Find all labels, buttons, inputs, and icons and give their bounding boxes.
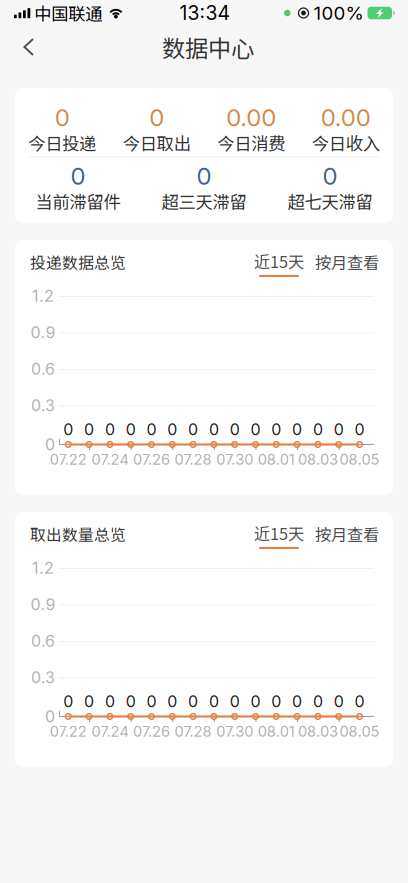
staticText: 0 (105, 692, 115, 711)
button[interactable]: 0 (15, 107, 109, 152)
staticText: 0 (313, 420, 323, 439)
staticText: 08.05 (339, 452, 379, 467)
staticText: 0 (334, 692, 344, 711)
staticText: 0.3 (31, 668, 55, 687)
staticText: 0.6 (31, 631, 55, 651)
staticText: 中国联通 (34, 0, 102, 26)
staticText: 0 (167, 420, 177, 439)
button[interactable]: 0 (109, 107, 204, 152)
staticText: 0 (63, 420, 73, 439)
staticText: 今日取出 (123, 133, 191, 152)
staticText: 0 (292, 692, 302, 711)
button[interactable]: 近15天 (15, 512, 393, 564)
staticText: 0 (45, 435, 55, 454)
staticText: 07.28 (175, 724, 212, 739)
staticText: 0 (354, 420, 364, 439)
staticText: 0 (167, 692, 177, 711)
staticText: 0.6 (31, 359, 55, 379)
staticText: 1.2 (32, 558, 54, 578)
staticText: 0 (334, 420, 344, 439)
staticText: 今日消费 (217, 133, 285, 152)
staticText: 0 (188, 692, 198, 711)
staticText: 0 (313, 692, 323, 711)
staticText: 08.03 (298, 452, 338, 467)
staticText: 1.2 (32, 286, 54, 306)
staticText: 按月查看 (315, 524, 379, 544)
staticText: 08.01 (258, 724, 295, 739)
staticText: 0 (105, 420, 115, 439)
button[interactable]: 0 (15, 165, 141, 211)
staticText: 100% (313, 2, 363, 24)
staticText: 按月查看 (315, 252, 379, 272)
staticText: 13:34 (179, 1, 229, 25)
staticText: 07.30 (216, 724, 253, 739)
staticText: 07.26 (133, 452, 170, 467)
staticText: 0 (188, 420, 198, 439)
button[interactable]: 近15天 (15, 240, 393, 292)
staticText: 0 (292, 420, 302, 439)
staticText: 近15天 (254, 523, 304, 543)
button[interactable]: 0 (267, 165, 393, 211)
staticText: 0 (55, 107, 70, 128)
staticText: 0 (322, 165, 337, 186)
staticText: 取出数量总览 (30, 524, 126, 544)
staticText: 投递数据总览 (30, 252, 126, 272)
staticText: 08.01 (258, 452, 295, 467)
staticText: 今日收入 (312, 133, 380, 152)
staticText: 今日投递 (28, 133, 96, 152)
button[interactable]: 按月查看 (15, 240, 393, 292)
staticText: 0 (146, 420, 156, 439)
staticText: 0.00 (226, 107, 276, 128)
staticText: 07.26 (133, 724, 170, 739)
staticText: 0 (70, 165, 85, 186)
staticText: 超三天滞留 (161, 191, 246, 211)
staticText: 07.28 (175, 452, 212, 467)
staticText: 0 (196, 165, 211, 186)
staticText: 07.24 (91, 724, 128, 739)
staticText: 0.9 (30, 323, 55, 342)
staticText: 数据中心 (162, 30, 254, 64)
staticText: 0 (63, 692, 73, 711)
button[interactable]: 0 (141, 165, 267, 211)
staticText: 0 (84, 420, 94, 439)
staticText: 0 (149, 107, 164, 128)
staticText: 0 (230, 420, 240, 439)
staticText: 0 (271, 692, 281, 711)
staticText: 0.3 (31, 396, 55, 415)
staticText: 0 (250, 692, 260, 711)
staticText: 0 (271, 420, 281, 439)
button[interactable]: 返回 (8, 26, 49, 68)
staticText: 07.22 (50, 452, 87, 467)
staticText: 0 (146, 692, 156, 711)
staticText: 超七天滞留 (287, 191, 372, 211)
staticText: 07.24 (91, 452, 128, 467)
staticText: 07.30 (216, 452, 253, 467)
staticText: 07.22 (50, 724, 87, 739)
staticText: 0 (84, 692, 94, 711)
staticText: 0 (209, 692, 219, 711)
button[interactable]: 0.00 (204, 107, 298, 152)
staticText: 近15天 (254, 251, 304, 271)
button[interactable]: 0.00 (298, 107, 393, 152)
staticText: 08.05 (339, 724, 379, 739)
staticText: 0 (126, 692, 136, 711)
button[interactable]: 按月查看 (15, 512, 393, 564)
staticText: 0 (354, 692, 364, 711)
staticText: 0 (126, 420, 136, 439)
staticText: 当前滞留件 (35, 191, 120, 211)
staticText: 0 (209, 420, 219, 439)
staticText: 0 (230, 692, 240, 711)
staticText: 0.00 (321, 107, 371, 128)
staticText: 0.9 (30, 595, 55, 614)
staticText: 08.03 (298, 724, 338, 739)
staticText: 0 (45, 707, 55, 726)
staticText: 0 (250, 420, 260, 439)
